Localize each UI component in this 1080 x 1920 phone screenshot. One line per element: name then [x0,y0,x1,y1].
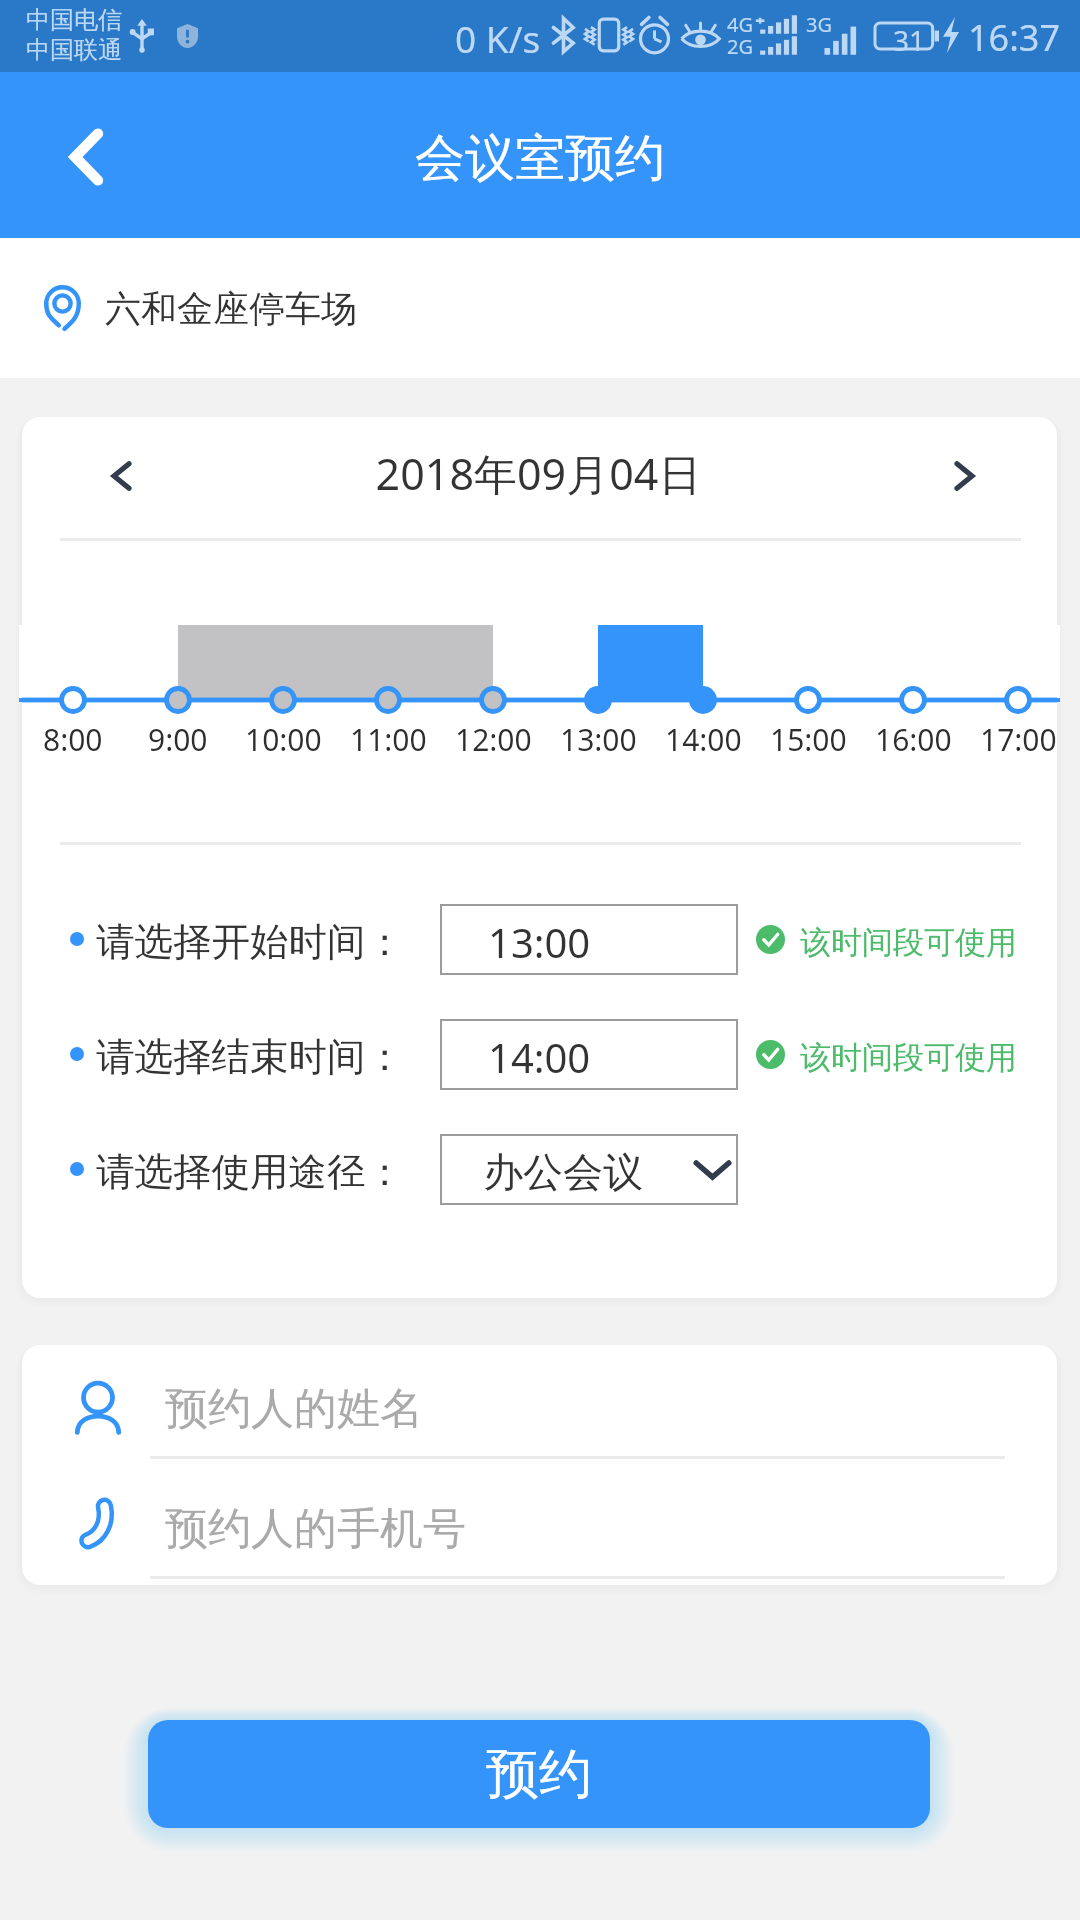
button[interactable]: 预约人的姓名 [22,1345,1057,1465]
staticText: 16:37 [968,13,1061,62]
button[interactable]: 办公会议 [440,1134,738,1205]
staticText: 8:00 [43,719,103,760]
staticText: 中国联通 [26,35,122,65]
staticText: 3G [806,11,832,38]
staticText: 14:00 [488,1030,591,1084]
staticText: 中国电信 [26,5,122,35]
button[interactable]: 14:00 [440,1019,738,1090]
staticText: 13:00 [560,719,637,760]
button[interactable]: Next day [942,441,992,511]
staticText: 4G [727,11,753,38]
staticText: 10:00 [245,719,322,760]
staticText: 31 [893,21,926,59]
staticText: 12:00 [455,719,532,760]
staticText: 请选择使用途径： [96,1148,404,1197]
staticText: 会议室预约 [415,127,665,190]
staticText: 13:00 [488,915,591,969]
staticText: 六和金座停车场 [105,286,357,331]
staticText: 9:00 [148,719,208,760]
button[interactable]: 13:00 [440,904,738,975]
staticText: 16:00 [875,719,952,760]
staticText: 15:00 [770,719,847,760]
staticText: 请选择结束时间： [96,1033,404,1082]
staticText: 0 K/s [455,13,541,63]
staticText: 预约人的姓名 [165,1382,423,1436]
button[interactable]: Previous day [94,441,144,511]
staticText: 11:00 [350,719,427,760]
button[interactable]: 预约人的手机号 [22,1465,1057,1585]
button[interactable]: 六和金座停车场 [0,238,1080,378]
staticText: 预约人的手机号 [165,1502,466,1556]
staticText: 2018年09月04日 [22,444,1056,503]
button[interactable]: Back [39,100,125,214]
staticText: 14:00 [665,719,742,760]
staticText: 17:00 [980,719,1057,760]
staticText: 该时间段可使用 [800,1038,1017,1077]
button[interactable]: 预约 [148,1720,930,1828]
staticText: 办公会议 [483,1147,643,1197]
staticText: 预约 [486,1741,592,1808]
staticText: 2G [727,33,753,60]
staticText: 请选择开始时间： [96,918,404,967]
staticText: 该时间段可使用 [800,923,1017,962]
